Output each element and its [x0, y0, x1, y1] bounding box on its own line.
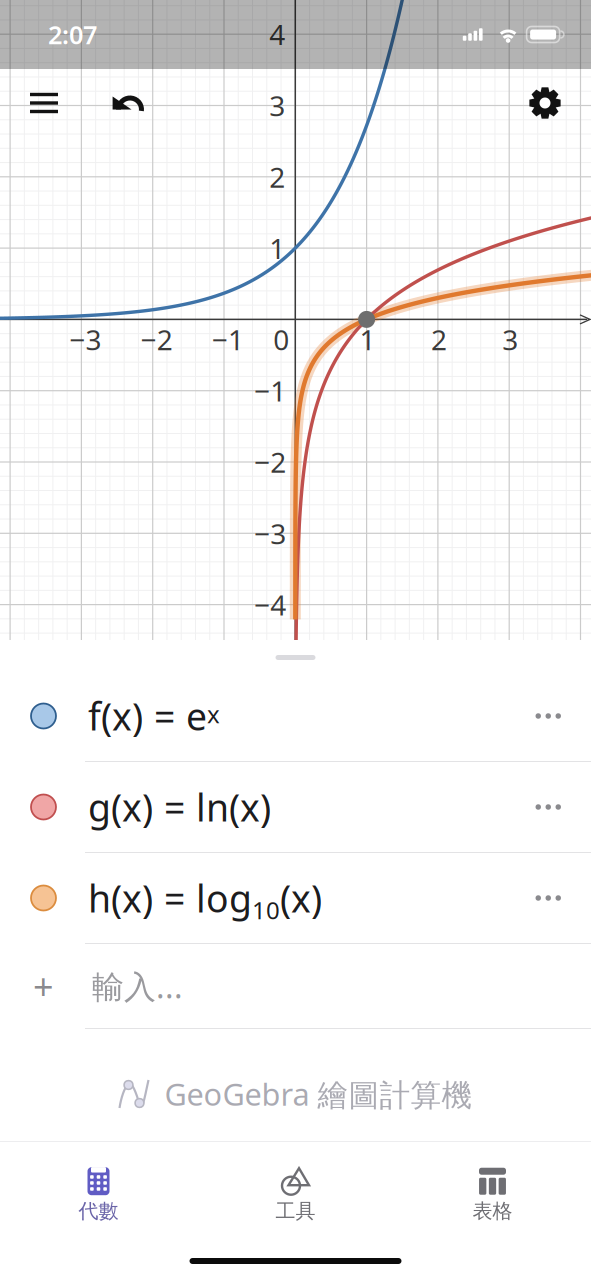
button[interactable]: Menu [14, 76, 74, 129]
button[interactable]: h(x) [0, 853, 591, 943]
button[interactable]: Undo [98, 82, 157, 123]
staticText: −3 [69, 321, 101, 358]
staticText: 工具 [275, 1199, 315, 1223]
button[interactable]: 代數 [0, 1169, 197, 1221]
staticText: 3 [269, 87, 285, 124]
staticText: GeoGebra 繪圖計算機 [164, 1074, 472, 1114]
staticText: f(x) [88, 691, 143, 741]
staticText: 1 [360, 321, 376, 358]
staticText: 表格 [472, 1199, 512, 1223]
staticText: −1 [212, 321, 244, 358]
button[interactable]: 表格 [394, 1169, 591, 1221]
staticText: = [154, 691, 175, 741]
staticText: h(x) [88, 873, 153, 923]
staticText: ln(x) [196, 782, 271, 832]
staticText: 4 [269, 16, 285, 53]
button[interactable]: 工具 [197, 1169, 394, 1221]
staticText: 10 [252, 894, 280, 926]
button[interactable]: + [0, 944, 591, 1028]
staticText: 2:07 [48, 18, 97, 51]
staticText: x [207, 698, 220, 730]
staticText: 代數 [78, 1199, 118, 1223]
staticText: e [186, 691, 207, 741]
staticText: −1 [254, 372, 286, 409]
staticText: 0 [273, 321, 289, 358]
staticText: 1 [269, 229, 285, 267]
button[interactable]: Settings [515, 73, 575, 133]
staticText: 2 [431, 321, 447, 358]
staticText: −2 [141, 321, 173, 358]
staticText: −2 [254, 443, 286, 481]
staticText: + [33, 962, 54, 1010]
staticText: −4 [254, 586, 286, 623]
button[interactable]: g(x) [0, 762, 591, 852]
staticText: = [164, 782, 185, 832]
button[interactable]: f(x) [0, 671, 591, 761]
staticText: g(x) [88, 782, 153, 832]
staticText: 2 [269, 158, 285, 195]
staticText: log [196, 873, 252, 923]
staticText: 3 [502, 321, 518, 358]
staticText: (x) [280, 873, 322, 923]
staticText: −3 [254, 515, 286, 552]
staticText: = [164, 873, 185, 923]
staticText: 輸入... [92, 965, 183, 1007]
